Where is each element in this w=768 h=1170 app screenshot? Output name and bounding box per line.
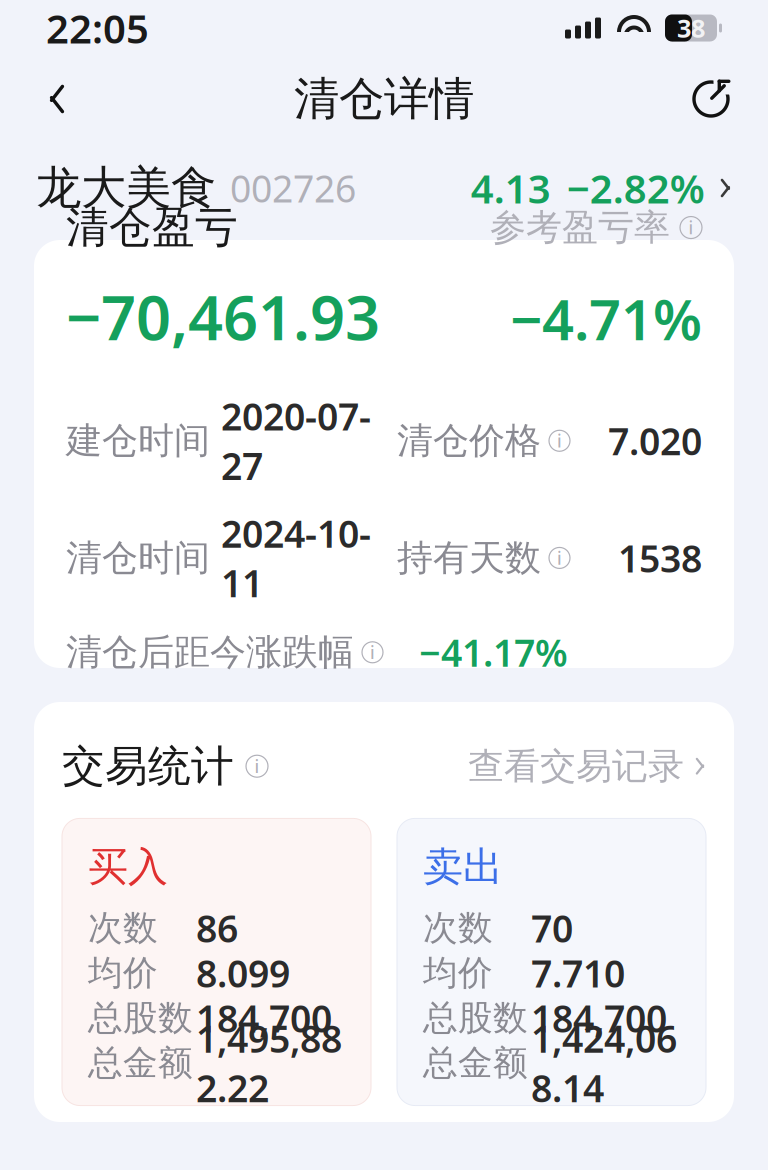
staticText: 4.13 [471, 161, 551, 214]
staticText: 清仓盈亏 [66, 201, 238, 254]
staticText: 清仓时间 [66, 536, 210, 580]
staticText: 8.099 [196, 948, 290, 998]
staticText: 总股数 [88, 997, 193, 1039]
staticText: 1,424,068.14 [531, 1013, 677, 1113]
button[interactable]: 龙大美食 [0, 142, 768, 234]
staticText: 7.710 [531, 948, 625, 998]
staticText: 参考盈亏率 [490, 205, 670, 250]
staticText: −70,461.93 [66, 276, 380, 357]
staticText: 002726 [230, 163, 356, 213]
button[interactable]: 分享 [682, 70, 740, 128]
staticText: i [370, 641, 375, 664]
staticText: 建仓时间 [66, 419, 210, 463]
staticText: 持有期上证指数涨跌幅 [66, 698, 426, 742]
staticText: i [557, 546, 562, 569]
staticText: 清仓后距今涨跌幅 [66, 630, 354, 674]
staticText: 总金额 [88, 1042, 193, 1084]
staticText: −2.82% [567, 161, 705, 214]
staticText: 70 [531, 903, 573, 953]
staticText: 查看交易记录 [468, 744, 684, 788]
staticText: −4.71% [510, 281, 702, 356]
staticText: 持有天数 [397, 536, 541, 580]
staticText: 1538 [618, 533, 702, 583]
button[interactable]: 返回 [28, 70, 86, 128]
staticText: +0.66% [461, 695, 588, 745]
staticText: 总金额 [423, 1042, 528, 1084]
staticText: 38 [677, 11, 705, 45]
staticText: 22:05 [46, 1, 149, 54]
staticText: 龙大美食 [36, 160, 216, 216]
staticText: 清仓详情 [294, 71, 474, 127]
staticText: 184,700 [196, 993, 332, 1043]
staticText: 卖出 [423, 842, 503, 891]
staticText: 2024-10-11 [221, 508, 371, 608]
staticText: 买入 [88, 842, 168, 891]
staticText: 1,495,882.22 [196, 1013, 342, 1113]
staticText: 交易统计 [62, 740, 234, 792]
staticText: 均价 [423, 952, 493, 994]
staticText: −41.17% [419, 627, 568, 677]
staticText: 7.020 [608, 416, 702, 466]
staticText: 86 [196, 903, 238, 953]
staticText: 总股数 [423, 997, 528, 1039]
staticText: 184,700 [531, 993, 667, 1043]
staticText: 次数 [423, 907, 493, 949]
staticText: i [557, 429, 562, 452]
staticText: 2020-07-27 [221, 391, 371, 490]
button[interactable]: 查看交易记录 [468, 744, 706, 788]
staticText: 清仓价格 [397, 419, 541, 463]
staticText: 均价 [88, 952, 158, 994]
staticText: 次数 [88, 907, 158, 949]
staticText: i [254, 755, 259, 778]
staticText: i [688, 216, 693, 239]
